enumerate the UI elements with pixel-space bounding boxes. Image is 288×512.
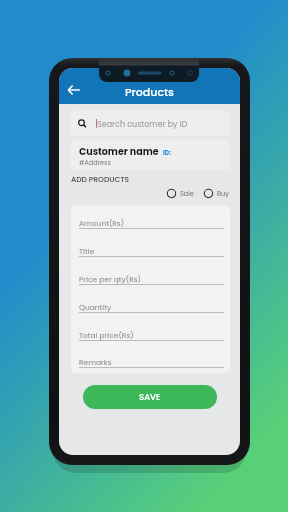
staticText: ADD PRODUCTS bbox=[71, 174, 129, 184]
staticText: Buy bbox=[217, 189, 229, 198]
button[interactable]: Customer name bbox=[71, 140, 230, 170]
staticText: Customer name bbox=[79, 145, 159, 158]
button[interactable]: SAVE bbox=[83, 385, 217, 409]
button[interactable]: Quantity bbox=[79, 302, 112, 312]
staticText: ID: bbox=[163, 149, 171, 157]
button[interactable]: Remarks bbox=[79, 357, 112, 367]
staticText: Search customer by ID bbox=[97, 119, 188, 130]
button[interactable]: Sale bbox=[166, 188, 191, 199]
button[interactable]: Title bbox=[79, 246, 95, 256]
staticText: Sale bbox=[180, 189, 194, 198]
button[interactable]: Amount(Rs) bbox=[79, 218, 125, 228]
staticText: Products bbox=[125, 84, 174, 99]
staticText: #Address bbox=[79, 158, 111, 167]
button[interactable]: Search customer by ID bbox=[71, 111, 230, 136]
button[interactable]: Back bbox=[64, 80, 84, 100]
button[interactable]: Total price(Rs) bbox=[79, 330, 134, 340]
staticText: SAVE bbox=[139, 391, 161, 403]
button[interactable]: Price per qty(Rs) bbox=[79, 274, 142, 284]
button[interactable]: Buy bbox=[203, 188, 226, 199]
